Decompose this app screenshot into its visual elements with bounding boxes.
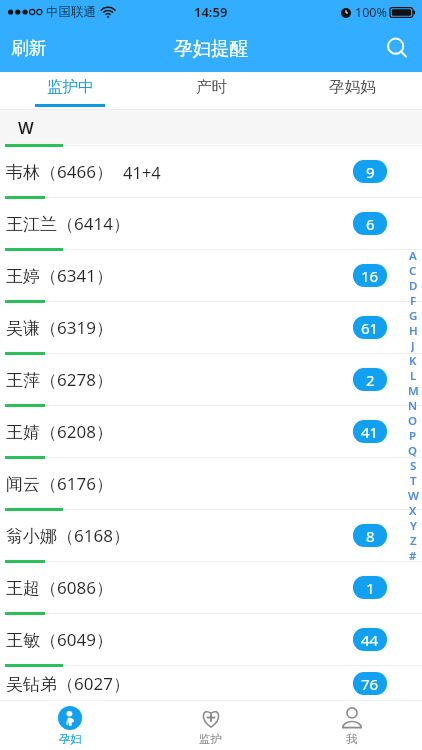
staticText: X (409, 503, 417, 518)
staticText: # (409, 548, 417, 563)
staticText: A (409, 248, 417, 263)
staticText: 41 (361, 422, 379, 442)
button[interactable]: 王萍（6278） (0, 355, 422, 404)
button[interactable]: 我 (281, 701, 422, 750)
staticText: 中国联通 (46, 4, 96, 20)
staticText: L (410, 368, 417, 383)
button[interactable]: 孕妈妈 (281, 72, 422, 109)
button[interactable]: 王婷（6341） (0, 251, 422, 300)
staticText: 监护中 (47, 77, 94, 97)
staticText: S (410, 458, 417, 473)
button[interactable]: Search (373, 24, 422, 72)
staticText: 2 (366, 370, 375, 390)
staticText: Z (410, 533, 417, 548)
staticText: Y (410, 518, 417, 533)
button[interactable]: 监护 (140, 701, 281, 750)
staticText: T (410, 473, 417, 488)
staticText: 王江兰（6414） (6, 212, 130, 235)
staticText: P (409, 428, 417, 443)
staticText: 翁小娜（6168） (6, 524, 130, 547)
staticText: G (409, 308, 418, 323)
staticText: D (409, 278, 418, 293)
staticText: 76 (361, 674, 379, 694)
staticText: Q (408, 443, 418, 458)
staticText: 孕妇提醒 (174, 37, 248, 60)
staticText: O (408, 413, 418, 428)
button[interactable]: 产时 (140, 72, 281, 109)
button[interactable]: 孕妇 (0, 701, 140, 750)
staticText: 吴钻弟（6027） (6, 672, 130, 695)
staticText: 100% (355, 4, 387, 21)
staticText: W (18, 116, 34, 138)
button[interactable]: 王超（6086） (0, 563, 422, 612)
staticText: 9 (366, 162, 375, 182)
staticText: 孕妈妈 (329, 77, 376, 97)
staticText: 王婧（6208） (6, 420, 113, 443)
staticText: 王敏（6049） (6, 628, 113, 651)
staticText: 王超（6086） (6, 576, 113, 599)
button[interactable]: 刷新 (0, 24, 57, 72)
staticText: 刷新 (11, 37, 46, 59)
staticText: F (410, 293, 417, 308)
staticText: J (411, 338, 415, 353)
button[interactable]: 监护中 (0, 72, 140, 109)
staticText: 8 (366, 526, 375, 546)
button[interactable]: 吴钻弟（6027） (0, 667, 422, 700)
staticText: 监护 (199, 732, 222, 746)
staticText: M (408, 383, 419, 398)
staticText: 6 (366, 214, 375, 234)
button[interactable]: 吴谦（6319） (0, 303, 422, 352)
button[interactable]: 韦林（6466） (0, 147, 422, 196)
button[interactable]: 王婧（6208） (0, 407, 422, 456)
staticText: W (408, 488, 419, 503)
staticText: 产时 (196, 77, 227, 97)
button[interactable]: 翁小娜（6168） (0, 511, 422, 560)
staticText: 61 (361, 318, 379, 338)
staticText: N (408, 398, 418, 413)
button[interactable]: 王敏（6049） (0, 615, 422, 664)
staticText: H (409, 323, 418, 338)
staticText: 孕妇 (59, 732, 82, 746)
button[interactable]: Alphabet index (404, 248, 422, 563)
staticText: 41+4 (123, 161, 161, 183)
staticText: K (409, 353, 417, 368)
staticText: 14:59 (194, 3, 228, 21)
staticText: 44 (361, 630, 379, 650)
button[interactable]: 闻云（6176） (0, 459, 422, 508)
staticText: 王婷（6341） (6, 264, 113, 287)
staticText: 闻云（6176） (6, 472, 113, 495)
staticText: 我 (346, 732, 358, 746)
staticText: 1 (366, 578, 375, 598)
staticText: 16 (361, 266, 379, 286)
staticText: 吴谦（6319） (6, 316, 113, 339)
staticText: 韦林（6466） (6, 160, 113, 183)
staticText: C (409, 263, 417, 278)
staticText: 王萍（6278） (6, 368, 113, 391)
button[interactable]: 王江兰（6414） (0, 199, 422, 248)
